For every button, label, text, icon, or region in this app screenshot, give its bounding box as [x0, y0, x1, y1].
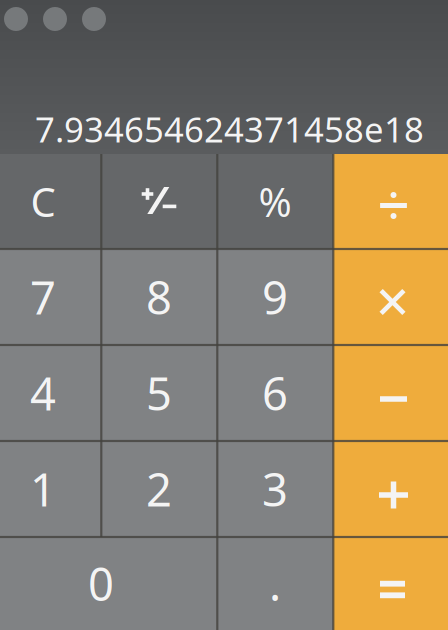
button[interactable]: Equals — [333, 537, 448, 630]
button[interactable]: 1 — [0, 441, 101, 537]
button[interactable]: Zoom — [82, 7, 106, 31]
button[interactable]: Multiply — [333, 249, 448, 345]
staticText: 2 — [146, 459, 172, 519]
button[interactable]: Divide — [333, 154, 448, 249]
button[interactable]: Minimize — [43, 7, 67, 31]
button[interactable]: 4 — [0, 345, 101, 441]
button[interactable]: 8 — [101, 249, 217, 345]
button[interactable]: 7 — [0, 249, 101, 345]
button[interactable]: Plus — [333, 441, 448, 537]
button[interactable]: 0 — [0, 537, 217, 630]
button[interactable]: C — [0, 154, 101, 249]
staticText: % — [258, 175, 291, 228]
button[interactable]: 5 — [101, 345, 217, 441]
staticText: 1 — [30, 459, 56, 519]
staticText: 5 — [146, 363, 172, 423]
staticText: 7 — [30, 267, 56, 327]
staticText: 7.934654624371458e18 — [35, 106, 424, 152]
staticText: 6 — [262, 363, 288, 423]
button[interactable]: Minus — [333, 345, 448, 441]
button[interactable]: . — [217, 537, 333, 630]
button[interactable]: 3 — [217, 441, 333, 537]
staticText: 4 — [30, 363, 56, 423]
button[interactable]: 6 — [217, 345, 333, 441]
staticText: 9 — [262, 267, 288, 327]
staticText: 0 — [88, 553, 114, 614]
button[interactable]: % — [217, 154, 333, 249]
button[interactable]: 2 — [101, 441, 217, 537]
staticText: . — [269, 553, 281, 614]
button[interactable]: Close — [4, 7, 28, 31]
staticText: 8 — [146, 267, 172, 327]
button[interactable]: 9 — [217, 249, 333, 345]
staticText: 3 — [262, 459, 288, 519]
button[interactable]: Plus minus — [101, 154, 217, 249]
staticText: C — [30, 175, 55, 228]
